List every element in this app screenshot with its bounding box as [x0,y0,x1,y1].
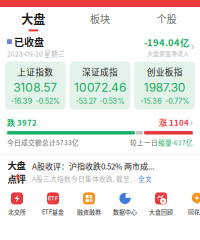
staticText: 大盘资金净流入 [147,49,189,58]
staticText: 融资融券 [77,207,101,216]
staticText: 板块 [90,11,110,26]
staticText: 大盘 [7,158,25,172]
staticText: 1987.30 [144,80,186,95]
staticText: 北交所 [8,207,26,216]
button[interactable]: 大盘 [0,155,200,187]
staticText: -16.39 [11,97,33,105]
staticText: 上证指数 [17,65,53,78]
staticText: 创业板指 [147,65,183,78]
staticText: A股三大指数今日集体收跌, 截至... [32,174,136,183]
staticText: 已收盘 [14,34,44,49]
staticText: 同花顺 [188,207,200,216]
button[interactable]: 上证指数 [5,61,66,109]
staticText: A股收评：沪指收跌0.52% 两市成... [32,160,154,172]
staticText: 大盘 [21,10,45,27]
staticText: 个股 [157,11,177,26]
staticText: 较上一日 [130,137,158,147]
button[interactable]: 融资融券 [73,192,105,216]
staticText: -53.27 [75,97,96,105]
staticText: -0.77% [165,97,189,105]
staticText: 3108.57 [13,80,57,95]
staticText: ETF基金 [42,207,64,216]
staticText: -15.36 [140,97,162,105]
button[interactable]: 北交所 [1,192,33,216]
button[interactable]: ETF [37,192,69,216]
staticText: 点评 [7,172,25,185]
staticText: 大盘回顾 [149,207,173,216]
staticText: 全文 [138,174,152,183]
staticText: › [191,41,195,52]
button[interactable]: 深证成指 [70,61,130,109]
staticText: 深证成指 [82,65,118,78]
button[interactable]: 数据中心 [109,192,141,216]
button[interactable]: -194.04亿 [144,35,195,57]
staticText: 涨 1104 [159,116,189,128]
staticText: -0.53% [99,97,124,105]
staticText: 10072.46 [74,80,126,95]
staticText: 缩量-617亿 [158,137,193,147]
button[interactable]: 大盘回顾 [145,192,177,216]
button[interactable]: 创业板指 [134,61,195,109]
staticText: 跌 3972 [7,116,37,128]
staticText: 今日成交额总计5733亿 [7,137,79,147]
staticText: ETF [48,195,58,202]
staticText: -194.04亿 [144,35,189,49]
staticText: 2023-09-20 星期三 [7,49,65,59]
button[interactable]: 大盘 [0,10,67,31]
staticText: 数据中心 [113,207,137,216]
button[interactable]: 涨 1104 [159,116,193,128]
staticText: -0.52% [36,97,60,105]
button[interactable]: 同花顺 [181,192,200,216]
button[interactable]: 个股 [133,11,200,30]
staticText: › [190,117,193,127]
button[interactable]: 板块 [67,11,133,30]
